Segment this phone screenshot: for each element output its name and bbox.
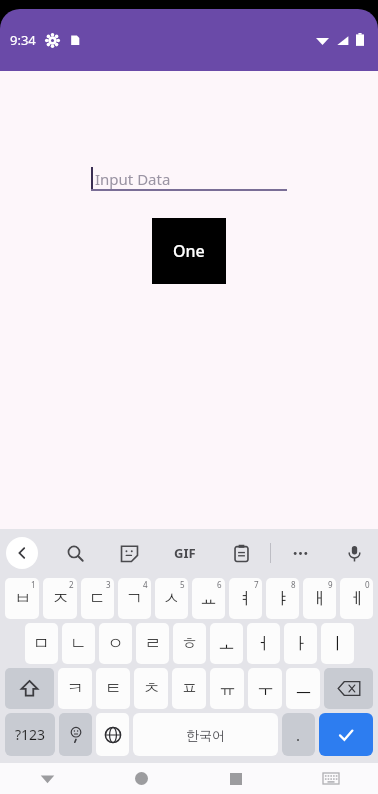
staticText: ㄱ — [126, 588, 143, 609]
button[interactable]: ㅜ — [248, 668, 282, 709]
staticText: ㅋ — [67, 678, 84, 699]
staticText: ㅏ — [292, 633, 309, 654]
staticText: GIF — [174, 544, 196, 562]
button[interactable]: GIF — [167, 535, 203, 571]
staticText: 한국어 — [186, 727, 225, 743]
button[interactable]: Enter — [319, 713, 373, 756]
button[interactable]: ㅛ — [192, 578, 225, 619]
button[interactable]: ㅋ — [58, 668, 92, 709]
staticText: ㅓ — [255, 633, 272, 654]
staticText: ㅌ — [105, 678, 122, 699]
button[interactable]: Back — [0, 763, 94, 794]
staticText: ㅔ — [348, 588, 365, 609]
button[interactable]: ㄷ — [81, 578, 114, 619]
button[interactable]: Input Data — [91, 159, 287, 189]
staticText: 5 — [180, 579, 185, 590]
button[interactable]: One — [152, 218, 226, 284]
button[interactable]: ㅊ — [134, 668, 168, 709]
staticText: ㅇ — [107, 633, 124, 654]
staticText: . — [296, 725, 301, 745]
button[interactable]: ㅠ — [210, 668, 244, 709]
staticText: ㅍ — [181, 678, 198, 699]
staticText: One — [173, 240, 205, 262]
staticText: ㅗ — [218, 633, 235, 654]
button[interactable]: Voice input — [338, 537, 370, 569]
button[interactable]: . — [282, 713, 315, 756]
button[interactable]: Recents — [188, 763, 283, 794]
button[interactable]: Backspace — [324, 668, 373, 709]
staticText: ㄷ — [89, 588, 106, 609]
staticText: ㅁ — [33, 633, 50, 654]
button[interactable]: ㅕ — [229, 578, 262, 619]
staticText: ㅕ — [237, 588, 254, 609]
button[interactable]: ㅑ — [266, 578, 299, 619]
button[interactable]: Home — [94, 763, 188, 794]
staticText: ㅑ — [274, 588, 291, 609]
button[interactable]: ?123 — [5, 713, 55, 756]
button[interactable]: ㅏ — [284, 623, 317, 664]
button[interactable]: Back — [6, 537, 38, 569]
button[interactable]: ㅈ — [43, 578, 77, 619]
button[interactable]: ㅔ — [340, 578, 373, 619]
staticText: ㅛ — [200, 588, 217, 609]
staticText: ㅅ — [163, 588, 180, 609]
button[interactable]: ㅐ — [303, 578, 336, 619]
button[interactable]: More options — [284, 537, 316, 569]
button[interactable]: ㄱ — [118, 578, 151, 619]
staticText: ㅠ — [219, 678, 236, 699]
button[interactable]: ㅂ — [5, 578, 39, 619]
staticText: ㅐ — [311, 588, 328, 609]
button[interactable]: Shift — [5, 668, 54, 709]
button[interactable]: ㅁ — [25, 623, 58, 664]
button[interactable]: ㅗ — [210, 623, 243, 664]
staticText: ㅊ — [143, 678, 160, 699]
staticText: ㄴ — [70, 633, 87, 654]
button[interactable]: ㅅ — [155, 578, 188, 619]
staticText: 4 — [143, 579, 148, 590]
staticText: ㅎ — [181, 633, 198, 654]
button[interactable]: ㅡ — [286, 668, 320, 709]
button[interactable]: ㅓ — [247, 623, 280, 664]
button[interactable]: ㅎ — [173, 623, 206, 664]
button[interactable]: Clipboard — [225, 537, 257, 569]
staticText: 3 — [106, 579, 111, 590]
staticText: 9:34 — [10, 31, 36, 49]
staticText: 1 — [31, 579, 36, 590]
staticText: ㅜ — [257, 678, 274, 699]
staticText: ㅣ — [329, 633, 346, 654]
button[interactable]: ㅇ — [99, 623, 132, 664]
staticText: ㅂ — [14, 588, 31, 609]
button[interactable]: 한국어 — [133, 713, 278, 756]
staticText: 7 — [254, 579, 259, 590]
button[interactable]: Stickers — [113, 537, 145, 569]
staticText: ?123 — [15, 725, 46, 744]
staticText: 2 — [69, 579, 74, 590]
button[interactable]: ㅣ — [321, 623, 354, 664]
staticText: ㅡ — [295, 678, 312, 699]
button[interactable]: Emoji — [59, 713, 92, 756]
button[interactable]: Switch keyboard — [283, 763, 378, 794]
button[interactable]: ㄹ — [136, 623, 169, 664]
staticText: ㄹ — [144, 633, 161, 654]
button[interactable]: ㅌ — [96, 668, 130, 709]
button[interactable]: Change language — [96, 713, 129, 756]
staticText: 6 — [217, 579, 222, 590]
staticText: 8 — [291, 579, 296, 590]
button[interactable]: Search — [59, 537, 91, 569]
button[interactable]: ㄴ — [62, 623, 95, 664]
staticText: Input Data — [95, 169, 171, 189]
button[interactable]: ㅍ — [172, 668, 206, 709]
staticText: 0 — [365, 579, 370, 590]
staticText: 9 — [328, 579, 333, 590]
staticText: ㅈ — [52, 588, 69, 609]
